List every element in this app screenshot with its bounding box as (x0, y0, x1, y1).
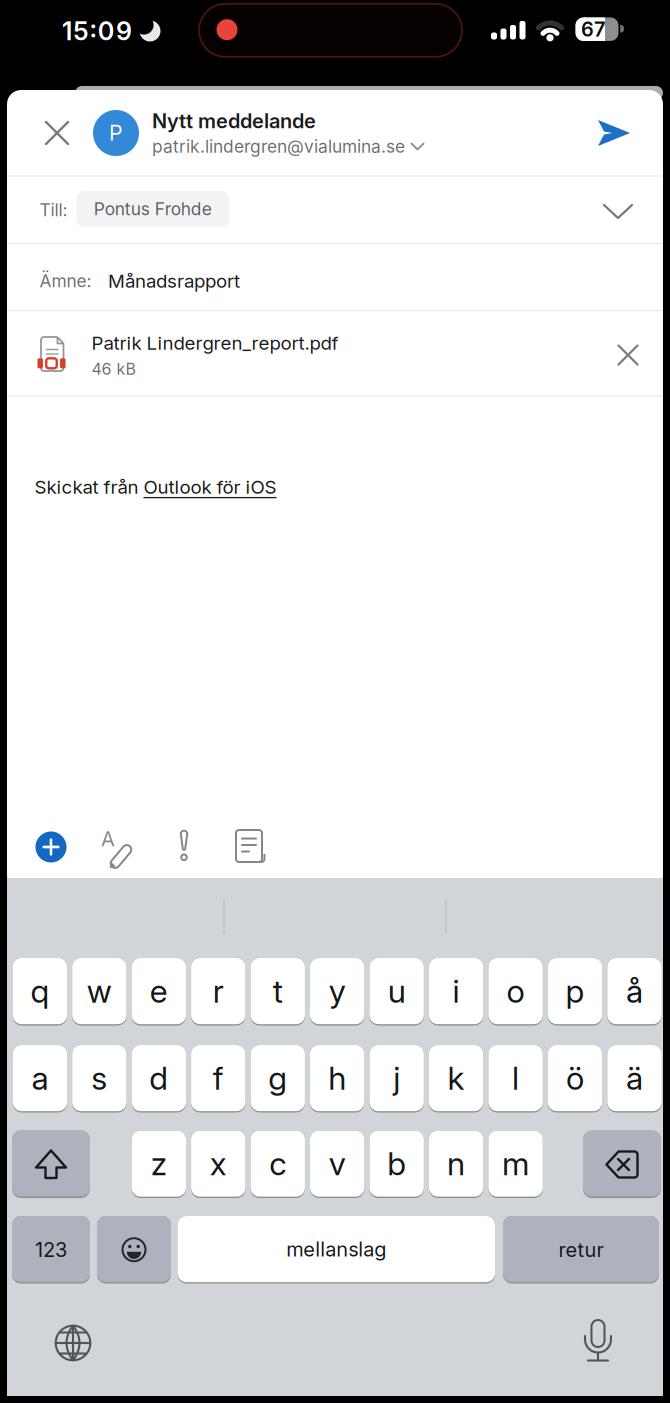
staticText: t (273, 972, 283, 1010)
staticText: patrik.lindergren@vialumina.se (152, 136, 405, 157)
button[interactable]: q (13, 958, 67, 1025)
button[interactable]: ä (607, 1045, 662, 1112)
staticText: Skickat från Outlook för iOS (34, 476, 276, 498)
button[interactable]: z (132, 1130, 186, 1198)
button[interactable]: i (429, 958, 483, 1025)
staticText: x (210, 1145, 227, 1182)
staticText: v (329, 1145, 346, 1182)
staticText: å (626, 972, 643, 1010)
button[interactable]: Emoji (97, 1216, 171, 1283)
button[interactable]: l (488, 1045, 543, 1112)
staticText: Till: (39, 200, 67, 220)
staticText: 123 (35, 1238, 67, 1262)
staticText: k (448, 1059, 465, 1097)
button[interactable]: Profil (93, 110, 139, 156)
button[interactable]: d (132, 1045, 186, 1112)
staticText: q (30, 972, 49, 1010)
staticText: A (101, 827, 115, 851)
button[interactable]: Diktering (576, 1317, 620, 1365)
staticText: 15:09 (62, 16, 132, 46)
button[interactable]: v (310, 1130, 364, 1198)
button[interactable]: Siffror (12, 1216, 90, 1283)
staticText: r (213, 972, 224, 1010)
staticText: Månadsrapport (108, 270, 240, 292)
staticText: e (150, 972, 168, 1010)
button[interactable]: f (191, 1045, 245, 1112)
button[interactable]: w (72, 958, 127, 1025)
staticText: j (393, 1059, 400, 1097)
staticText: Nytt meddelande (152, 109, 316, 133)
button[interactable]: Radera (583, 1130, 661, 1198)
button[interactable]: Stäng (35, 111, 79, 155)
staticText: P (109, 120, 123, 146)
button[interactable]: Prioritet (164, 822, 204, 866)
button[interactable]: j (369, 1045, 424, 1112)
button[interactable]: Nästa tangentbord (51, 1321, 95, 1365)
button[interactable]: g (250, 1045, 305, 1112)
staticText: f (213, 1059, 224, 1097)
button[interactable]: Mallar (228, 825, 272, 869)
staticText: ä (626, 1059, 643, 1097)
staticText: s (91, 1059, 107, 1097)
button[interactable]: b (369, 1130, 424, 1198)
staticText: u (388, 972, 406, 1010)
button[interactable]: ö (548, 1045, 602, 1112)
button[interactable]: m (488, 1130, 543, 1198)
button[interactable]: Ta bort bilaga (608, 335, 648, 375)
button[interactable]: Bifoga (35, 831, 66, 862)
staticText: y (329, 972, 346, 1010)
staticText: g (268, 1059, 287, 1097)
staticText: 67 (581, 17, 605, 41)
staticText: h (328, 1059, 346, 1097)
button[interactable]: h (310, 1045, 364, 1112)
staticText: a (31, 1059, 48, 1097)
button[interactable]: Byt konto (152, 136, 462, 156)
staticText: 46 kB (91, 360, 135, 378)
staticText: m (502, 1145, 529, 1182)
staticText: d (149, 1059, 168, 1097)
staticText: Pontus Frohde (94, 199, 212, 219)
button[interactable]: o (488, 958, 543, 1025)
button[interactable]: Retur (503, 1216, 659, 1283)
staticText: i (453, 972, 460, 1010)
button[interactable]: p (548, 958, 602, 1025)
button[interactable]: e (132, 958, 186, 1025)
staticText: retur (558, 1238, 603, 1262)
button[interactable]: Pontus Frohde (77, 191, 229, 227)
staticText: c (269, 1145, 286, 1182)
button[interactable]: t (250, 958, 305, 1025)
button[interactable]: a (13, 1045, 67, 1112)
button[interactable]: c (250, 1130, 305, 1198)
staticText: o (507, 972, 525, 1010)
button[interactable]: r (191, 958, 245, 1025)
button[interactable]: å (607, 958, 662, 1025)
button[interactable]: s (72, 1045, 127, 1112)
staticText: ö (566, 1059, 584, 1097)
staticText: w (87, 972, 112, 1010)
button[interactable]: u (369, 958, 424, 1025)
button[interactable]: x (191, 1130, 245, 1198)
button[interactable]: Skift (12, 1130, 90, 1198)
staticText: p (565, 972, 584, 1010)
staticText: z (151, 1145, 167, 1182)
staticText: n (447, 1145, 465, 1182)
staticText: b (387, 1145, 406, 1182)
button[interactable]: Skicka (592, 113, 636, 153)
button[interactable]: Visa fler mottagarfält (596, 193, 640, 229)
button[interactable]: y (310, 958, 364, 1025)
button[interactable]: n (429, 1130, 483, 1198)
button[interactable]: Formatering (96, 824, 140, 868)
staticText: mellanslag (286, 1237, 386, 1261)
staticText: Ämne: (39, 271, 91, 291)
button[interactable]: Mellanslag (177, 1216, 495, 1283)
staticText: Patrik Lindergren_report.pdf (91, 332, 338, 354)
staticText: l (512, 1059, 519, 1097)
button[interactable]: k (429, 1045, 483, 1112)
